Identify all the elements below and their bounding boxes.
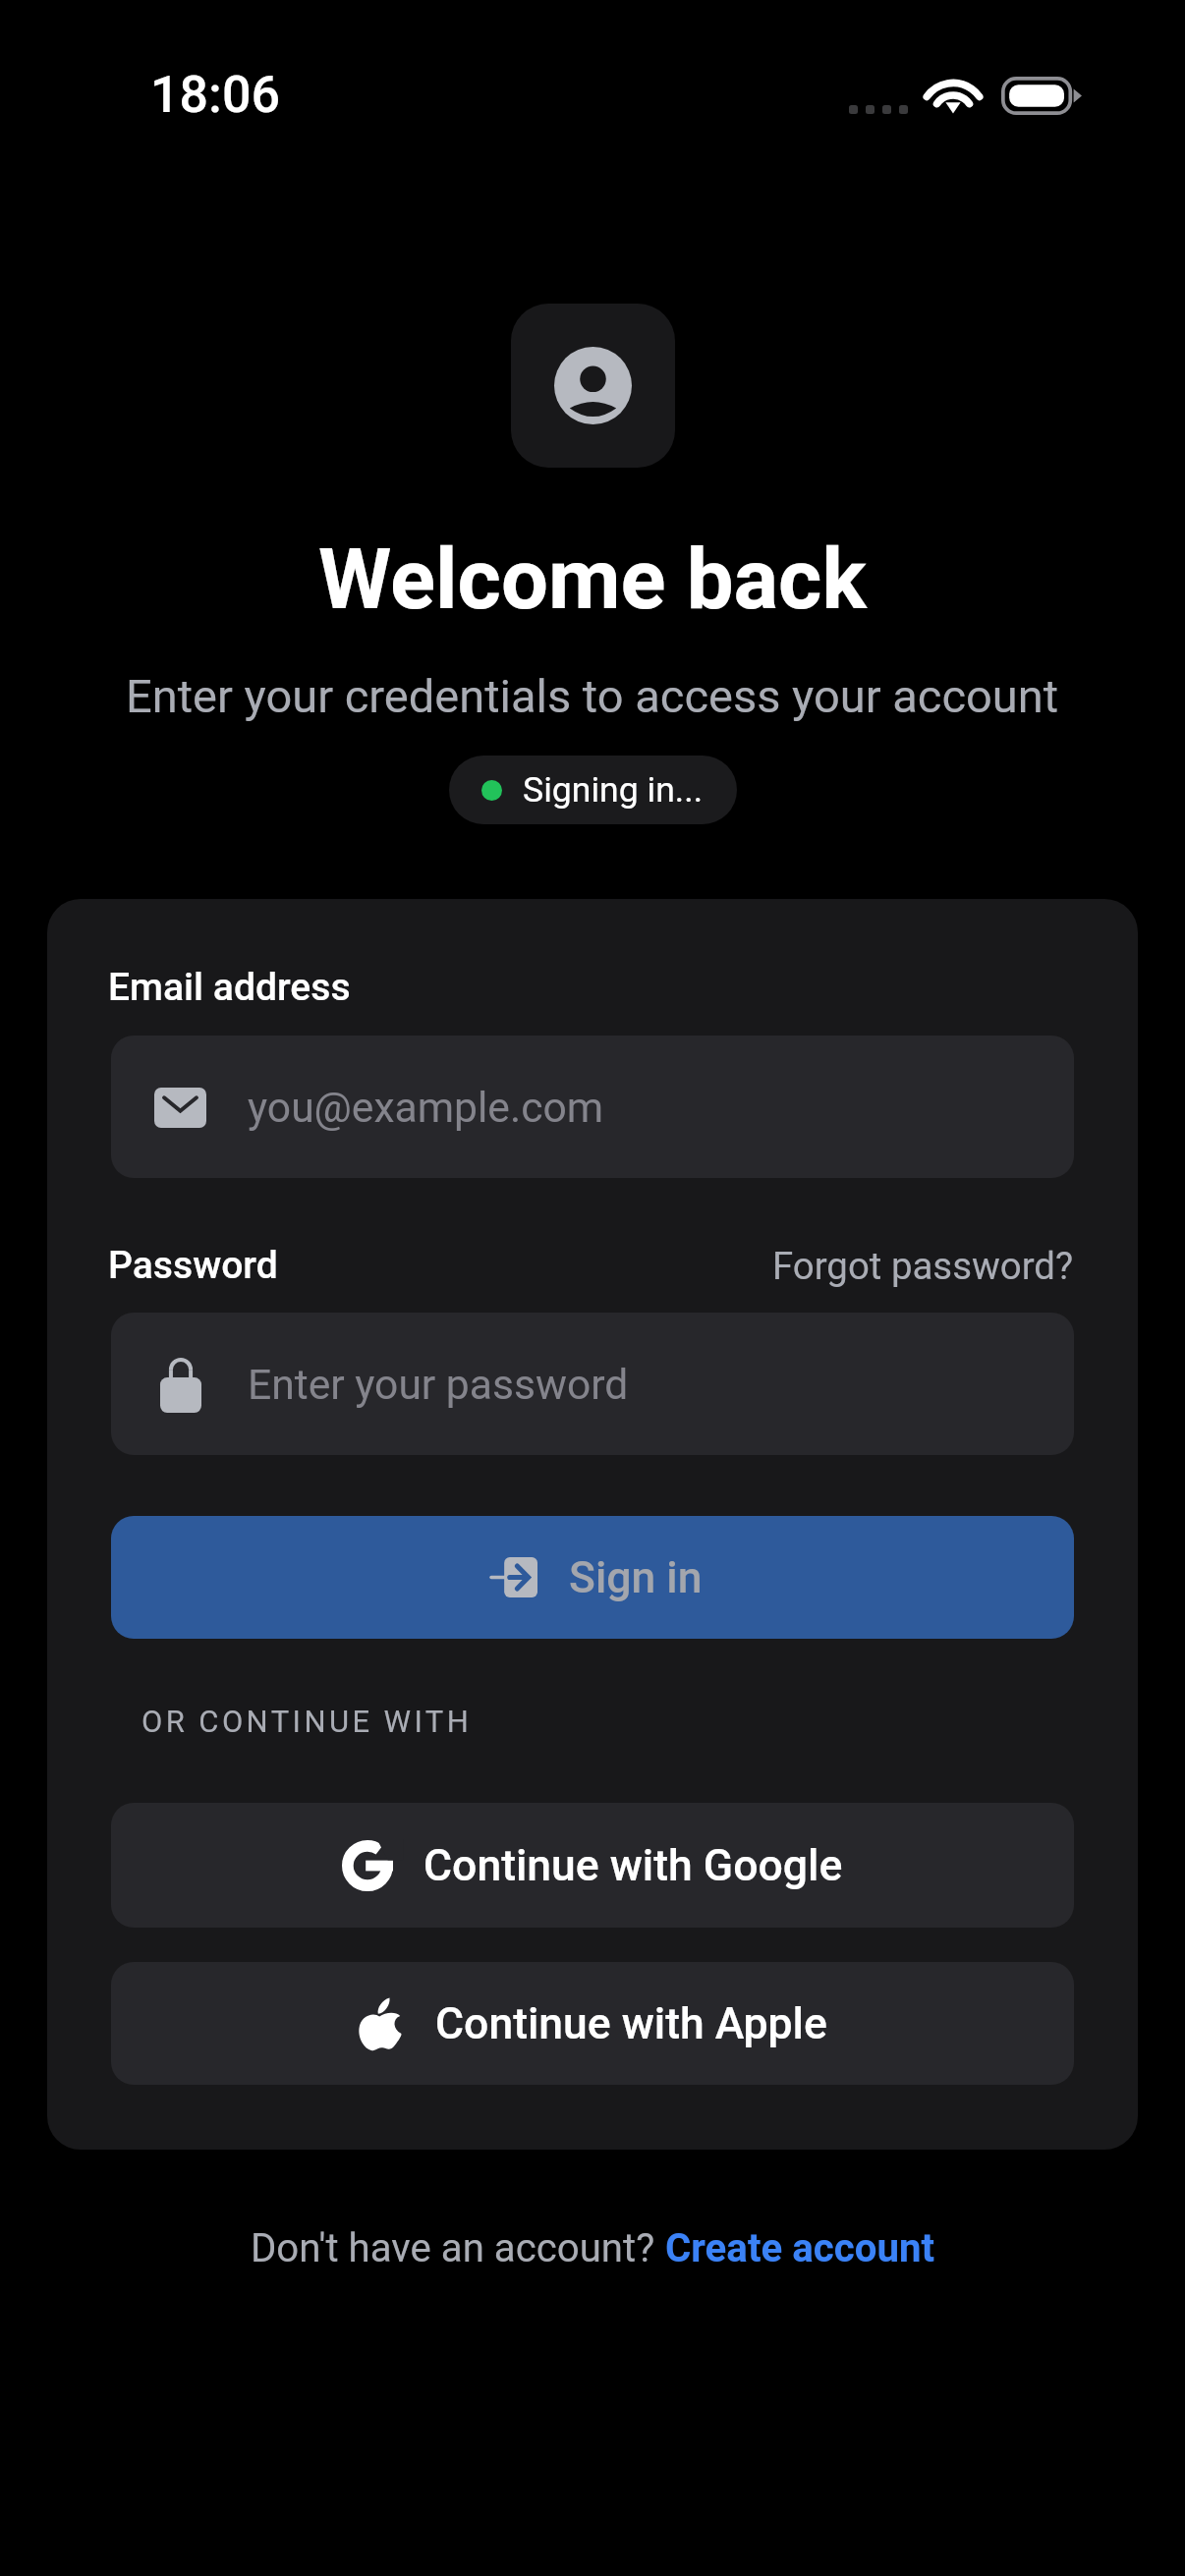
staticText: Enter your credentials to access your ac…: [126, 669, 1059, 723]
button[interactable]: Signing in...: [449, 756, 737, 824]
staticText: Email address: [108, 965, 351, 1010]
button[interactable]: Create account: [665, 2225, 935, 2271]
staticText: Enter your password: [248, 1360, 629, 1409]
button[interactable]: Sign in: [111, 1516, 1074, 1639]
other: Account avatar: [511, 304, 675, 468]
staticText: Password: [108, 1243, 278, 1288]
button[interactable]: Enter your password: [111, 1313, 1074, 1455]
staticText: Sign in: [569, 1552, 703, 1603]
button[interactable]: Continue with Apple: [111, 1962, 1074, 2085]
staticText: OR CONTINUE WITH: [141, 1704, 473, 1739]
staticText: Don't have an account?: [251, 2225, 665, 2271]
staticText: Forgot password?: [772, 1244, 1074, 1288]
staticText: Welcome back: [318, 531, 867, 629]
staticText: you@example.com: [248, 1083, 604, 1132]
staticText: Continue with Apple: [435, 1998, 827, 2049]
staticText: 18:06: [150, 65, 281, 125]
staticText: Continue with Google: [423, 1840, 843, 1891]
button[interactable]: Forgot password?: [772, 1244, 1074, 1288]
button[interactable]: Continue with Google: [111, 1803, 1074, 1928]
staticText: Create account: [665, 2225, 935, 2271]
staticText: Signing in...: [523, 769, 704, 811]
button[interactable]: you@example.com: [111, 1036, 1074, 1178]
